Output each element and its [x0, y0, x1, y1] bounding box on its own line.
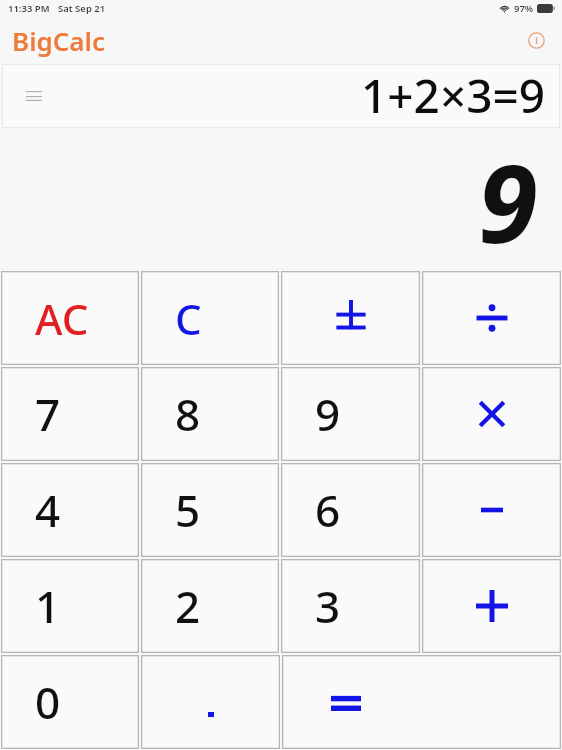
staticText: 9 — [478, 128, 538, 264]
button[interactable]: Divide — [422, 271, 561, 365]
button[interactable]: Minus — [422, 463, 561, 557]
staticText: 4 — [35, 480, 61, 540]
button[interactable]: Info — [520, 24, 552, 56]
button[interactable]: 8 — [141, 367, 279, 461]
staticText: Sat Sep 21 — [58, 2, 106, 15]
button[interactable]: 1 — [1, 559, 139, 653]
staticText: 8 — [175, 384, 201, 444]
button[interactable]: 1+2×3=9 — [2, 64, 560, 128]
button[interactable]: 3 — [281, 559, 420, 653]
staticText: 11:33 PM — [8, 2, 50, 15]
staticText: 6 — [315, 480, 341, 540]
staticText: 1 — [35, 576, 61, 636]
button[interactable]: 2 — [141, 559, 279, 653]
staticText: AC — [35, 290, 89, 347]
button[interactable]: Multiply — [422, 367, 561, 461]
button[interactable]: 0 — [1, 655, 139, 749]
staticText: 2 — [175, 576, 201, 636]
button[interactable]: Decimal point — [141, 655, 280, 749]
button[interactable]: C — [141, 271, 279, 365]
button[interactable]: 9 — [281, 367, 420, 461]
staticText: 97% — [514, 2, 534, 15]
staticText: 9 — [315, 384, 341, 444]
button[interactable]: 7 — [1, 367, 139, 461]
staticText: 7 — [35, 384, 61, 444]
staticText: BigCalc — [12, 23, 105, 58]
staticText: 5 — [175, 480, 201, 540]
button[interactable]: 6 — [281, 463, 420, 557]
staticText: 0 — [35, 672, 61, 732]
staticText: 1+2×3=9 — [361, 64, 546, 126]
staticText: 3 — [315, 576, 341, 636]
button[interactable]: AC — [1, 271, 139, 365]
staticText: C — [175, 290, 202, 347]
button[interactable]: 4 — [1, 463, 139, 557]
button[interactable]: Plus minus — [281, 271, 420, 365]
button[interactable]: BigCalc — [10, 21, 107, 60]
button[interactable]: Plus — [422, 559, 561, 653]
button[interactable]: Equals — [282, 655, 561, 749]
button[interactable]: 5 — [141, 463, 279, 557]
